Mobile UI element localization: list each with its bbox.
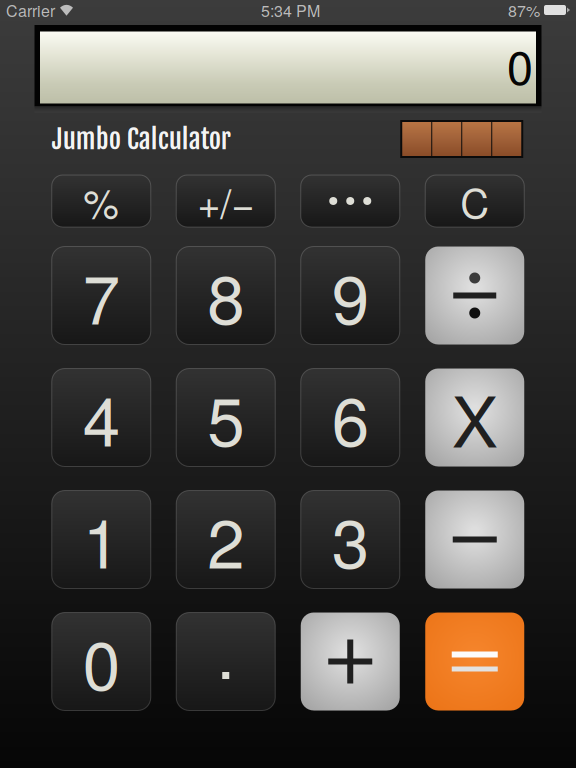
staticText: 1: [83, 491, 120, 588]
staticText: Jumbo Calculator: [52, 122, 231, 156]
staticText: 7: [83, 247, 120, 344]
staticText: 87%: [508, 0, 540, 21]
button[interactable]: Plus or minus: [176, 175, 275, 227]
staticText: 0: [507, 31, 533, 98]
button[interactable]: Divide: [425, 246, 524, 344]
button[interactable]: %: [52, 175, 151, 227]
staticText: +/−: [197, 172, 254, 230]
staticText: %: [83, 172, 119, 230]
staticText: 5:34 PM: [261, 0, 320, 21]
staticText: 5: [207, 369, 244, 466]
button[interactable]: 6: [301, 368, 400, 466]
button[interactable]: 5: [176, 368, 275, 466]
staticText: 6: [332, 369, 369, 466]
staticText: 4: [83, 369, 120, 466]
button[interactable]: 0: [52, 612, 151, 710]
staticText: 9: [332, 247, 369, 344]
staticText: 8: [207, 247, 244, 344]
button[interactable]: 3: [301, 490, 400, 588]
button[interactable]: 8: [176, 246, 275, 344]
button[interactable]: 2: [176, 490, 275, 588]
staticText: 0: [83, 613, 120, 710]
button[interactable]: Equals: [425, 612, 524, 710]
staticText: X: [452, 368, 498, 467]
staticText: C: [460, 172, 489, 230]
button[interactable]: 7: [52, 246, 151, 344]
button[interactable]: Add: [301, 612, 400, 710]
button[interactable]: Multiply: [425, 368, 524, 466]
button[interactable]: Subtract: [425, 490, 524, 588]
staticText: 2: [207, 491, 244, 588]
button[interactable]: Clear: [425, 175, 524, 227]
staticText: Carrier: [6, 0, 55, 21]
staticText: 3: [332, 491, 369, 588]
button[interactable]: More: [301, 175, 400, 227]
button[interactable]: 1: [52, 490, 151, 588]
button[interactable]: Decimal point: [176, 612, 275, 710]
button[interactable]: 4: [52, 368, 151, 466]
button[interactable]: 9: [301, 246, 400, 344]
